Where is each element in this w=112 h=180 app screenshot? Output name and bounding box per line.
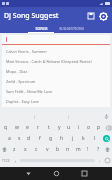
button[interactable]: Sam Feldt - Show Me Love — [2, 86, 110, 96]
button[interactable]: Backspace — [104, 122, 112, 133]
button[interactable]: y — [54, 122, 64, 133]
button[interactable]: ? — [93, 144, 103, 155]
button[interactable]: c — [31, 144, 42, 155]
staticText: , — [15, 157, 17, 164]
staticText: z — [13, 146, 16, 153]
button[interactable]: Mopo - Diaz — [2, 66, 110, 76]
button[interactable]: Shift — [103, 144, 112, 155]
button[interactable]: j — [67, 133, 78, 144]
button[interactable]: Duplex - Easy Love — [2, 96, 110, 106]
staticText: v — [46, 146, 49, 153]
staticText: w — [15, 124, 19, 131]
staticText: j — [72, 135, 74, 142]
button[interactable]: i — [74, 122, 84, 133]
staticText: a — [8, 135, 11, 142]
staticText: Dj Song Suggest — [4, 11, 85, 21]
button[interactable]: Zedd - Spectrum — [2, 76, 110, 86]
button[interactable]: n — [63, 144, 73, 155]
button[interactable]: SUGGESTIONS — [58, 24, 84, 33]
staticText: ! — [87, 146, 89, 153]
staticText: SONGS — [35, 26, 48, 31]
button[interactable]: u — [64, 122, 74, 133]
staticText: y — [58, 124, 61, 131]
button[interactable]: Recents — [70, 167, 98, 180]
button[interactable]: Home — [42, 167, 70, 180]
button[interactable]: ! — [83, 144, 93, 155]
staticText: c — [35, 146, 38, 153]
button[interactable]: m — [73, 144, 83, 155]
button[interactable]: Voice input — [102, 112, 111, 121]
button[interactable]: Save — [85, 10, 97, 22]
button[interactable]: o — [84, 122, 94, 133]
button[interactable]: Emoji — [103, 155, 112, 166]
button[interactable]: Shift — [0, 144, 9, 155]
button[interactable]: Symbols — [0, 155, 12, 166]
staticText: s — [18, 135, 21, 142]
staticText: x — [24, 146, 27, 153]
button[interactable]: Back — [14, 167, 42, 180]
staticText: h — [60, 135, 64, 142]
staticText: n — [66, 146, 70, 153]
button[interactable]: Calvin Harris - Summer — [2, 46, 110, 56]
staticText: m — [76, 146, 81, 153]
button[interactable]: Search — [100, 133, 112, 144]
staticText: l — [94, 135, 96, 142]
staticText: d — [27, 135, 31, 142]
button[interactable]: f — [34, 133, 45, 144]
button[interactable]: s — [14, 133, 24, 144]
staticText: b — [56, 146, 60, 153]
staticText: g — [49, 135, 53, 142]
staticText: k — [82, 135, 85, 142]
button[interactable]: x — [20, 144, 31, 155]
button[interactable]: e — [22, 122, 33, 133]
staticText: . — [99, 157, 101, 164]
button[interactable]: g — [45, 133, 56, 144]
button[interactable]: r — [33, 122, 44, 133]
button[interactable]: Settings — [97, 10, 109, 22]
button[interactable]: , — [12, 155, 19, 166]
staticText: Calvin Harris - Summer — [6, 49, 48, 54]
staticText: i — [78, 124, 80, 131]
button[interactable]: h — [56, 133, 67, 144]
staticText: ? — [97, 146, 100, 153]
button[interactable]: b — [53, 144, 63, 155]
button[interactable]: q — [0, 122, 11, 133]
button[interactable]: SONGS — [28, 24, 54, 33]
button[interactable]: v — [42, 144, 53, 155]
staticText: Zedd - Spectrum — [6, 79, 36, 84]
button[interactable]: p — [94, 122, 104, 133]
button[interactable]: d — [24, 133, 34, 144]
staticText: Mopo - Diaz — [6, 69, 28, 74]
staticText: Sam Feldt - Show Me Love — [6, 89, 53, 94]
staticText: u — [67, 124, 71, 131]
button[interactable]: l — [89, 133, 100, 144]
staticText: q — [4, 124, 8, 131]
staticText: e — [26, 124, 29, 131]
button[interactable]: Matt Simons - Catch & Release (Deepend R… — [2, 56, 110, 66]
staticText: r — [37, 124, 40, 131]
button[interactable]: t — [44, 122, 54, 133]
staticText: p — [97, 124, 101, 131]
button[interactable]: z — [9, 144, 20, 155]
staticText: Matt Simons - Catch & Release (Deepend R… — [6, 59, 92, 64]
staticText: Duplex - Easy Love — [6, 99, 39, 104]
staticText: SUGGESTIONS — [59, 26, 84, 31]
staticText: t — [48, 124, 50, 131]
button[interactable]: . — [96, 155, 103, 166]
staticText: ?123 — [2, 158, 10, 163]
staticText: o — [87, 124, 91, 131]
button[interactable]: a — [4, 133, 14, 144]
button[interactable]: w — [11, 122, 22, 133]
button[interactable]: k — [78, 133, 89, 144]
staticText: f — [39, 135, 41, 142]
